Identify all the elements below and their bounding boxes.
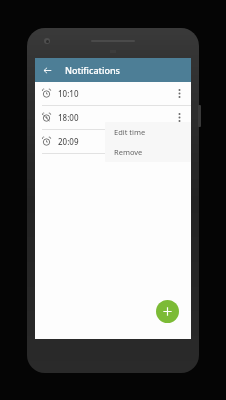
- staticText: Edit time: [114, 127, 146, 137]
- button[interactable]: Remove: [105, 142, 191, 162]
- button[interactable]: 10:10: [35, 82, 191, 105]
- button[interactable]: 18:00: [35, 106, 191, 129]
- button[interactable]: Back: [35, 58, 59, 82]
- button[interactable]: 20:09: [35, 130, 191, 153]
- button[interactable]: Edit time: [105, 122, 191, 142]
- staticText: 20:09: [58, 136, 79, 147]
- button[interactable]: Add notification: [156, 300, 179, 323]
- button[interactable]: More options: [171, 82, 187, 105]
- staticText: Notifications: [65, 64, 120, 76]
- button[interactable]: More options: [171, 106, 187, 129]
- staticText: Remove: [114, 147, 143, 157]
- staticText: 10:10: [58, 88, 79, 99]
- staticText: 18:00: [58, 112, 79, 123]
